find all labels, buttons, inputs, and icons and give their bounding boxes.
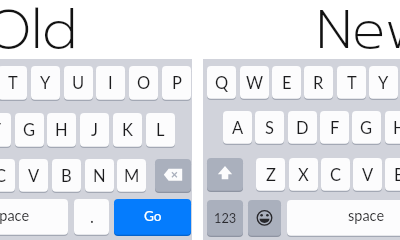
button[interactable]: V: [19, 159, 48, 193]
button[interactable]: space: [287, 200, 400, 237]
button[interactable]: Z: [256, 158, 285, 192]
button[interactable]: C: [0, 159, 15, 193]
staticText: K: [122, 120, 133, 140]
staticText: Go: [144, 208, 162, 224]
button[interactable]: W: [240, 66, 269, 100]
staticText: M: [124, 166, 140, 186]
button[interactable]: C: [321, 158, 350, 192]
staticText: J: [91, 120, 98, 140]
staticText: space: [348, 207, 385, 224]
button[interactable]: P: [162, 66, 191, 101]
button[interactable]: Go: [114, 199, 191, 236]
staticText: H: [393, 118, 400, 138]
staticText: G: [360, 118, 373, 138]
button[interactable]: N: [85, 159, 114, 193]
staticText: .: [90, 207, 94, 227]
button[interactable]: G: [15, 113, 44, 148]
button[interactable]: V: [353, 158, 382, 192]
button[interactable]: Q: [207, 66, 236, 100]
staticText: B: [61, 166, 72, 186]
staticText: B: [394, 165, 400, 185]
staticText: Y: [40, 73, 51, 93]
button[interactable]: Y: [369, 66, 398, 100]
button[interactable]: I: [96, 66, 125, 101]
button[interactable]: R: [304, 66, 333, 100]
button[interactable]: Emoji: [248, 200, 281, 237]
button[interactable]: M: [117, 159, 146, 193]
staticText: W: [246, 73, 264, 93]
staticText: X: [298, 165, 309, 185]
staticText: V: [28, 166, 40, 186]
button[interactable]: H: [47, 113, 76, 148]
button[interactable]: J: [80, 113, 109, 148]
staticText: L: [156, 120, 165, 140]
button[interactable]: O: [129, 66, 158, 101]
button[interactable]: T: [0, 66, 27, 101]
staticText: T: [347, 73, 357, 93]
staticText: H: [55, 120, 68, 140]
button[interactable]: U: [64, 66, 93, 101]
button[interactable]: 123: [207, 200, 243, 237]
staticText: A: [232, 118, 244, 138]
staticText: space: [0, 207, 30, 224]
button[interactable]: .: [74, 199, 109, 236]
button[interactable]: X: [289, 158, 318, 192]
button[interactable]: F: [320, 111, 349, 145]
staticText: U: [72, 73, 85, 93]
staticText: P: [172, 73, 182, 93]
staticText: S: [265, 118, 274, 138]
button[interactable]: D: [288, 111, 317, 145]
button[interactable]: Y: [31, 66, 60, 101]
button[interactable]: S: [255, 111, 284, 145]
button[interactable]: K: [113, 113, 142, 148]
staticText: R: [313, 73, 324, 93]
staticText: Y: [378, 73, 389, 93]
button[interactable]: F: [0, 113, 11, 148]
staticText: I: [108, 73, 113, 93]
button[interactable]: Shift: [207, 158, 243, 192]
staticText: G: [23, 120, 36, 140]
staticText: Old: [0, 0, 78, 71]
staticText: Z: [266, 165, 276, 185]
staticText: V: [362, 165, 374, 185]
button[interactable]: T: [337, 66, 366, 100]
button[interactable]: A: [223, 111, 252, 145]
button[interactable]: space: [0, 199, 68, 236]
staticText: F: [330, 118, 340, 138]
button[interactable]: L: [146, 113, 175, 148]
staticText: T: [8, 73, 18, 93]
staticText: 123: [214, 210, 237, 225]
staticText: C: [0, 166, 7, 186]
button[interactable]: B: [52, 159, 81, 193]
button[interactable]: Delete: [155, 159, 191, 193]
staticText: E: [282, 73, 292, 93]
staticText: N: [93, 166, 106, 186]
staticText: Q: [215, 73, 229, 93]
button[interactable]: E: [272, 66, 301, 100]
button[interactable]: H: [385, 111, 400, 145]
button[interactable]: G: [352, 111, 381, 145]
staticText: D: [296, 118, 309, 138]
staticText: C: [330, 165, 342, 185]
staticText: New: [316, 0, 400, 71]
staticText: O: [137, 73, 151, 93]
staticText: F: [0, 120, 2, 140]
button[interactable]: B: [385, 158, 400, 192]
